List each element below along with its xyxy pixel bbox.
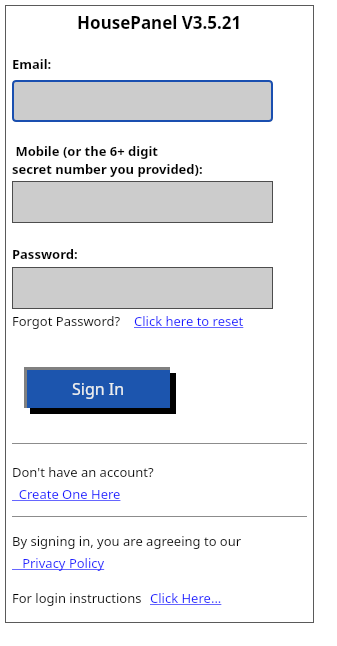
staticText: Click Here... [150,589,222,607]
button[interactable]: Privacy Policy [12,554,105,572]
button[interactable]: Sign In [24,367,176,414]
button[interactable]: Click here to reset [134,312,244,330]
staticText: Password: [12,245,78,263]
staticText: Sign In [72,378,125,400]
staticText: Email: [12,55,52,73]
button[interactable]: Click Here... [150,589,222,607]
staticText: Mobile (or the 6+ digit [12,142,158,160]
staticText: Don't have an account? [12,463,154,481]
button[interactable] [12,80,273,122]
button[interactable]: Create One Here [12,485,121,503]
button[interactable] [12,181,273,223]
button[interactable] [12,267,273,309]
staticText: Privacy Policy [12,554,105,572]
staticText: secret number you provided): [12,160,203,178]
staticText: By signing in, you are agreeing to our [12,532,242,550]
staticText: Forgot Password? [12,312,121,330]
staticText: Create One Here [12,485,121,503]
staticText: HousePanel V3.5.21 [77,11,242,34]
staticText: Click here to reset [134,312,244,330]
staticText: For login instructions [12,589,142,607]
